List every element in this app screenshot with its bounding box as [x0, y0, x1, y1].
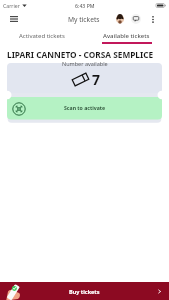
button[interactable]: Scan to activate — [7, 97, 162, 120]
staticText: My tickets — [68, 15, 100, 24]
button[interactable]: Buy tickets — [0, 282, 169, 300]
staticText: 7 — [92, 70, 101, 89]
staticText: Carrier — [3, 2, 20, 9]
button[interactable]: Profile — [114, 13, 126, 25]
staticText: Scan to activate — [64, 104, 106, 111]
staticText: LIPARI CANNETO - CORSA SEMPLICE — [7, 49, 154, 60]
button[interactable]: Available tickets — [84, 27, 169, 44]
button[interactable]: Open navigation menu — [8, 13, 20, 25]
staticText: Available tickets — [103, 32, 150, 40]
button[interactable]: More options — [147, 13, 159, 25]
button[interactable]: Activated tickets — [0, 27, 84, 44]
staticText: 6:43 PM — [75, 2, 95, 9]
staticText: Number available — [62, 60, 108, 67]
staticText: Activated tickets — [19, 32, 65, 40]
button[interactable]: Support chat — [130, 13, 142, 25]
staticText: Buy tickets — [69, 288, 100, 295]
